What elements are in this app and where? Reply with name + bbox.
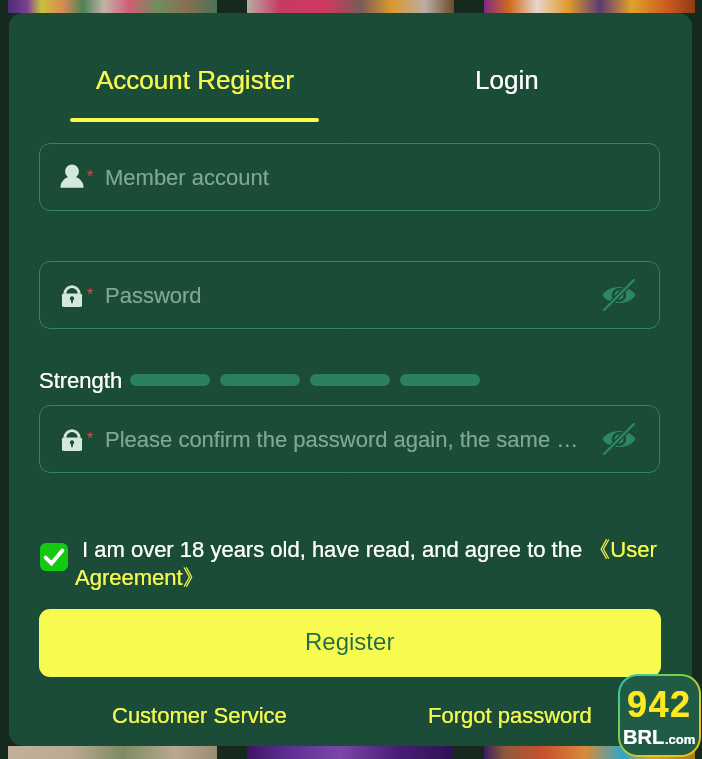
staticText: * (87, 430, 94, 448)
button[interactable]: Login (401, 65, 612, 109)
button[interactable]: Register (39, 609, 661, 677)
button[interactable]: 942BRL.com (620, 676, 699, 755)
button[interactable]: Show password (600, 420, 638, 458)
staticText: .com (665, 732, 696, 747)
staticText: * (87, 286, 94, 304)
button[interactable]: * (39, 261, 660, 329)
staticText: Please confirm the password again, the s… (105, 427, 579, 452)
staticText: Register (305, 628, 395, 655)
button[interactable]: * (39, 405, 660, 473)
button[interactable]: Show password (600, 276, 638, 314)
staticText: Forgot password (428, 703, 592, 728)
button[interactable]: Customer Service (112, 703, 287, 728)
staticText: Member account (105, 165, 269, 190)
staticText: Password (105, 283, 202, 308)
staticText: 942 (627, 684, 692, 724)
staticText: BRL (623, 726, 665, 748)
button[interactable]: * (39, 143, 660, 211)
button[interactable]: I agree checkbox (40, 543, 68, 571)
button[interactable]: Forgot password (428, 703, 592, 728)
staticText: * (87, 168, 94, 186)
button[interactable]: I am over 18 years old, have read, and a… (75, 536, 675, 591)
staticText: Customer Service (112, 703, 287, 728)
staticText: Login (475, 65, 539, 94)
staticText: Strength (39, 368, 123, 393)
button[interactable]: Account Register (61, 65, 328, 139)
staticText: Account Register (96, 65, 294, 94)
staticText: I am over 18 years old, have read, and a… (75, 536, 675, 591)
